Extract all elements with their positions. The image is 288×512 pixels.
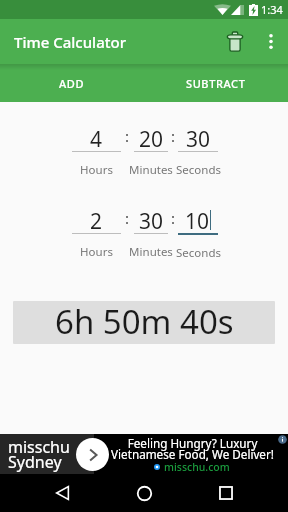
button[interactable]: Back bbox=[42, 474, 82, 512]
button[interactable]: 4 bbox=[72, 125, 121, 151]
button[interactable]: ADD bbox=[0, 64, 144, 102]
button[interactable]: Open ad bbox=[76, 438, 109, 471]
staticText: misschu Sydney bbox=[8, 436, 70, 472]
staticText: Time Calculator bbox=[14, 32, 127, 52]
button[interactable]: 30 bbox=[178, 125, 218, 151]
staticText: 1:34 bbox=[261, 2, 283, 17]
button[interactable]: 6h 50m 40s bbox=[13, 301, 275, 344]
button[interactable]: 10 bbox=[178, 207, 218, 233]
button[interactable]: 2 bbox=[72, 207, 121, 233]
staticText: 2 bbox=[90, 207, 103, 233]
button[interactable]: 20 bbox=[134, 125, 168, 151]
staticText: 6h 50m 40s bbox=[55, 301, 234, 342]
staticText: misschu.com bbox=[164, 460, 230, 474]
staticText: : bbox=[171, 208, 176, 228]
staticText: 20 bbox=[139, 125, 164, 151]
button[interactable]: Clear bbox=[216, 19, 253, 64]
staticText: : bbox=[125, 208, 130, 228]
staticText: Hours bbox=[80, 162, 113, 178]
staticText: Seconds bbox=[176, 162, 221, 178]
staticText: 30 bbox=[139, 207, 164, 233]
staticText: 30 bbox=[186, 125, 211, 151]
button[interactable]: SUBTRACT bbox=[144, 64, 288, 102]
button[interactable]: misschu Sydney bbox=[0, 434, 288, 474]
button[interactable]: Recents bbox=[206, 474, 246, 512]
staticText: SUBTRACT bbox=[186, 76, 246, 91]
staticText: 10 bbox=[185, 207, 210, 233]
staticText: 4 bbox=[90, 125, 103, 151]
button[interactable]: More options bbox=[253, 19, 288, 64]
staticText: ADD bbox=[59, 76, 85, 91]
staticText: Hours bbox=[80, 244, 113, 260]
staticText: Minutes bbox=[129, 244, 173, 260]
button[interactable]: 30 bbox=[134, 207, 168, 233]
staticText: : bbox=[171, 126, 176, 146]
staticText: Minutes bbox=[129, 162, 173, 178]
button[interactable]: Home bbox=[124, 474, 164, 512]
staticText: Feeling Hungry? Luxury Vietnamese Food, … bbox=[111, 435, 274, 463]
button[interactable]: Ad info bbox=[278, 435, 287, 444]
staticText: Seconds bbox=[176, 245, 221, 261]
staticText: : bbox=[125, 126, 130, 146]
